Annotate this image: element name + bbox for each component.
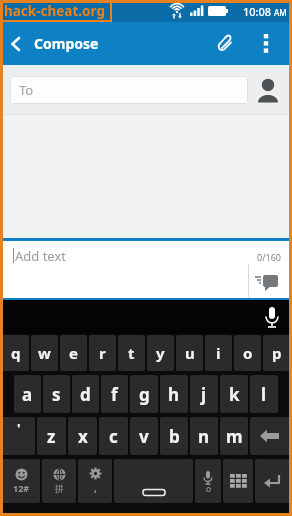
button[interactable]: c xyxy=(99,417,128,455)
button[interactable] xyxy=(216,33,236,53)
button[interactable]: Add text xyxy=(0,238,292,300)
staticText: To xyxy=(19,81,34,99)
staticText: n xyxy=(198,425,210,448)
staticText: y xyxy=(156,343,165,363)
staticText: 拼 xyxy=(55,483,64,494)
button[interactable]: f xyxy=(101,375,128,413)
button[interactable] xyxy=(254,274,280,294)
staticText: hack-cheat.org xyxy=(4,2,105,20)
staticText: f xyxy=(111,383,118,406)
staticText: h xyxy=(168,383,180,406)
staticText: l xyxy=(261,383,267,406)
staticText: j xyxy=(201,383,207,406)
staticText: t xyxy=(128,343,135,363)
button[interactable] xyxy=(114,459,193,503)
button[interactable]: l xyxy=(250,375,278,413)
button[interactable]: x xyxy=(68,417,97,455)
button[interactable]: e xyxy=(60,335,87,371)
button[interactable]: , xyxy=(78,459,112,503)
button[interactable] xyxy=(223,459,253,503)
staticText: Compose xyxy=(34,34,99,53)
button[interactable]: k xyxy=(220,375,248,413)
staticText: a xyxy=(22,383,33,406)
button[interactable]: y xyxy=(147,335,174,371)
staticText: 12# xyxy=(13,482,30,494)
button[interactable]: j xyxy=(190,375,218,413)
staticText: , xyxy=(94,481,97,495)
staticText: 10:08 AM xyxy=(243,4,287,19)
button[interactable]: m xyxy=(220,417,248,455)
staticText: r xyxy=(99,343,106,363)
button[interactable]: r xyxy=(89,335,116,371)
button[interactable]: u xyxy=(176,335,203,371)
button[interactable]: n xyxy=(190,417,218,455)
staticText: c xyxy=(109,425,118,448)
button[interactable]: z xyxy=(37,417,66,455)
staticText: k xyxy=(229,383,240,406)
button[interactable]: To xyxy=(10,76,248,104)
staticText: 0/160 xyxy=(257,251,281,263)
staticText: e xyxy=(69,343,78,363)
button[interactable]: o xyxy=(234,335,261,371)
staticText: m xyxy=(226,425,243,448)
button[interactable] xyxy=(195,459,221,503)
button[interactable]: 12# xyxy=(2,459,40,503)
staticText: i xyxy=(216,343,221,363)
staticText: v xyxy=(139,425,149,448)
staticText: g xyxy=(139,383,150,406)
button[interactable]: s xyxy=(43,375,70,413)
staticText: w xyxy=(38,343,51,363)
button[interactable]: Compose xyxy=(0,34,99,53)
button[interactable] xyxy=(250,417,290,455)
staticText: s xyxy=(52,383,61,406)
button[interactable]: d xyxy=(72,375,99,413)
staticText: d xyxy=(80,383,91,406)
staticText: p xyxy=(272,343,282,363)
button[interactable]: g xyxy=(130,375,158,413)
button[interactable]: 拼 xyxy=(42,459,76,503)
button[interactable] xyxy=(252,73,284,105)
staticText: u xyxy=(185,343,195,363)
button[interactable] xyxy=(262,306,282,330)
staticText: ' xyxy=(17,419,21,437)
button[interactable]: b xyxy=(160,417,188,455)
button[interactable] xyxy=(255,459,290,503)
button[interactable]: h xyxy=(160,375,188,413)
button[interactable]: p xyxy=(263,335,290,371)
staticText: z xyxy=(47,425,56,448)
staticText: q xyxy=(11,343,21,363)
button[interactable]: v xyxy=(130,417,158,455)
button[interactable]: w xyxy=(31,335,58,371)
staticText: x xyxy=(78,425,88,448)
staticText: o xyxy=(243,343,253,363)
button[interactable]: q xyxy=(2,335,29,371)
button[interactable] xyxy=(258,33,274,55)
button[interactable]: a xyxy=(14,375,41,413)
button[interactable]: t xyxy=(118,335,145,371)
staticText: Add text xyxy=(15,247,67,265)
button[interactable]: ' xyxy=(2,417,35,455)
staticText: b xyxy=(169,425,180,448)
button[interactable]: i xyxy=(205,335,232,371)
